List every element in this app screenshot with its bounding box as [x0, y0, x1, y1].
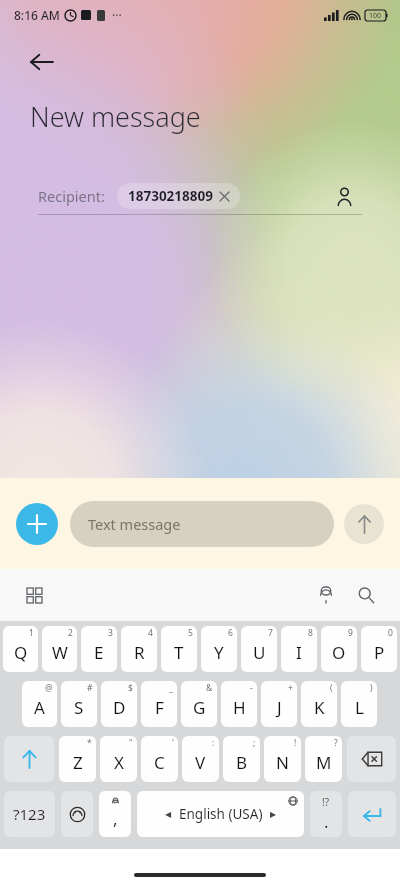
- staticText: Text message: [88, 514, 181, 534]
- button[interactable]: Choose contact: [326, 178, 362, 214]
- staticText: !: [294, 737, 297, 749]
- button[interactable]: Text message: [70, 501, 334, 547]
- button[interactable]: ": [100, 736, 137, 782]
- staticText: Z: [73, 751, 83, 774]
- button[interactable]: ◀: [137, 791, 304, 837]
- staticText: English (USA): [179, 805, 263, 823]
- button[interactable]: 7: [241, 626, 277, 672]
- button[interactable]: Back: [18, 38, 66, 86]
- staticText: ▶: [270, 810, 277, 819]
- staticText: ,: [113, 807, 118, 830]
- button[interactable]: 5: [161, 626, 197, 672]
- staticText: M: [316, 751, 332, 774]
- staticText: ;: [253, 737, 256, 749]
- staticText: New message: [30, 98, 201, 135]
- button[interactable]: (: [301, 681, 337, 727]
- staticText: J: [277, 696, 282, 719]
- button[interactable]: &: [181, 681, 217, 727]
- staticText: 4: [148, 627, 153, 639]
- staticText: T: [174, 641, 184, 664]
- staticText: F: [155, 696, 164, 719]
- staticText: 9: [348, 627, 353, 639]
- staticText: !?: [322, 795, 330, 809]
- button[interactable]: _: [141, 681, 177, 727]
- staticText: ': [172, 737, 174, 749]
- staticText: 7: [268, 627, 273, 639]
- staticText: +: [288, 682, 293, 694]
- staticText: ): [370, 682, 373, 694]
- staticText: ?123: [13, 804, 46, 824]
- staticText: S: [74, 696, 84, 719]
- staticText: Y: [214, 641, 224, 664]
- staticText: P: [374, 641, 385, 664]
- staticText: V: [195, 751, 206, 774]
- staticText: 8:16 AM: [14, 7, 60, 23]
- staticText: 100: [369, 11, 382, 21]
- button[interactable]: Comma: [99, 791, 131, 837]
- button[interactable]: 8: [281, 626, 317, 672]
- button[interactable]: Voice input: [306, 575, 346, 615]
- staticText: &: [206, 682, 213, 694]
- staticText: _: [169, 682, 173, 694]
- staticText: 2: [68, 627, 73, 639]
- staticText: E: [94, 641, 104, 664]
- button[interactable]: Search: [346, 575, 386, 615]
- button[interactable]: $: [101, 681, 137, 727]
- staticText: :: [212, 737, 215, 749]
- staticText: X: [114, 751, 124, 774]
- staticText: @: [45, 682, 53, 694]
- staticText: K: [314, 696, 325, 719]
- staticText: Recipient:: [38, 186, 105, 206]
- staticText: $: [128, 682, 133, 694]
- button[interactable]: Emoji: [61, 791, 93, 837]
- button[interactable]: Enter: [348, 791, 396, 837]
- button[interactable]: ': [141, 736, 178, 782]
- button[interactable]: 2: [42, 626, 77, 672]
- button[interactable]: 0: [361, 626, 397, 672]
- staticText: -: [250, 682, 253, 694]
- staticText: ?: [334, 737, 338, 749]
- button[interactable]: *: [59, 736, 96, 782]
- button[interactable]: 18730218809: [117, 183, 240, 209]
- staticText: O: [332, 641, 346, 664]
- staticText: 5: [188, 627, 193, 639]
- button[interactable]: ?123: [4, 791, 55, 837]
- button[interactable]: 1: [3, 626, 38, 672]
- button[interactable]: ?: [305, 736, 342, 782]
- button[interactable]: ): [341, 681, 377, 727]
- button[interactable]: :: [182, 736, 219, 782]
- button[interactable]: Backspace: [347, 736, 396, 782]
- staticText: C: [154, 751, 165, 774]
- staticText: A: [34, 696, 45, 719]
- staticText: *: [87, 737, 92, 749]
- staticText: .: [324, 810, 329, 833]
- staticText: Q: [14, 641, 28, 664]
- staticText: ···: [112, 7, 122, 23]
- button[interactable]: Shift: [4, 736, 54, 782]
- staticText: I: [296, 641, 302, 664]
- button[interactable]: +: [261, 681, 297, 727]
- button[interactable]: 6: [201, 626, 237, 672]
- staticText: ◀: [165, 810, 172, 819]
- button[interactable]: !: [264, 736, 301, 782]
- button[interactable]: Period: [310, 791, 342, 837]
- button[interactable]: -: [221, 681, 257, 727]
- button[interactable]: @: [22, 681, 57, 727]
- staticText: R: [134, 641, 145, 664]
- staticText: 3: [108, 627, 113, 639]
- button[interactable]: 9: [321, 626, 357, 672]
- button[interactable]: ;: [223, 736, 260, 782]
- staticText: 18730218809: [128, 187, 213, 205]
- button[interactable]: #: [61, 681, 97, 727]
- button[interactable]: 4: [121, 626, 157, 672]
- staticText: W: [52, 641, 68, 664]
- staticText: G: [193, 696, 206, 719]
- staticText: B: [236, 751, 248, 774]
- button[interactable]: 3: [81, 626, 117, 672]
- staticText: D: [113, 696, 126, 719]
- button[interactable]: Send: [344, 504, 384, 544]
- button[interactable]: Toolbar: [14, 575, 54, 615]
- staticText: ": [129, 737, 133, 749]
- button[interactable]: Add attachment: [16, 503, 58, 545]
- staticText: 8: [308, 627, 313, 639]
